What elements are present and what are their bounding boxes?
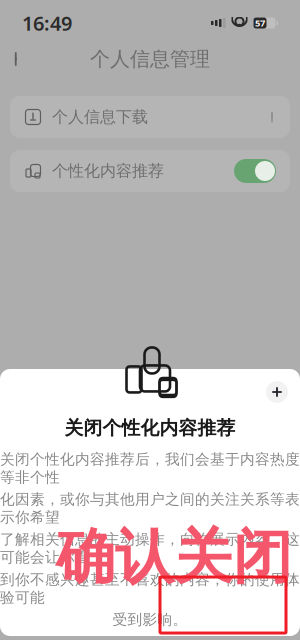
staticText: 受到影响。 <box>112 610 187 628</box>
staticText: 16:49 <box>22 10 72 36</box>
staticText: 个人信息管理 <box>90 47 210 71</box>
staticText: 化因素，或你与其他用户之间的关注关系等表示你希望 <box>0 490 300 526</box>
staticText: 关闭个性化内容推荐 <box>64 416 235 439</box>
staticText: 到你不感兴趣甚至不喜欢的内容，你的使用体验可能 <box>0 570 300 606</box>
staticText: 57 <box>255 17 265 29</box>
staticText: 关闭个性化内容推荐后，我们会基于内容热度等非个性 <box>0 450 300 486</box>
staticText: 确认关闭 <box>56 521 292 593</box>
button[interactable]: 关闭 <box>262 377 292 407</box>
button[interactable]: 返回 <box>0 42 34 76</box>
staticText: 个人信息下载 <box>52 107 148 127</box>
staticText: 个性化内容推荐 <box>52 161 164 181</box>
staticText: 了解相关信息的主动操作，向你展示内容，这可能会让你看 <box>0 530 300 566</box>
button[interactable]: 个性化内容推荐开关 <box>234 159 276 183</box>
button[interactable]: 个人信息下载 <box>10 96 290 138</box>
